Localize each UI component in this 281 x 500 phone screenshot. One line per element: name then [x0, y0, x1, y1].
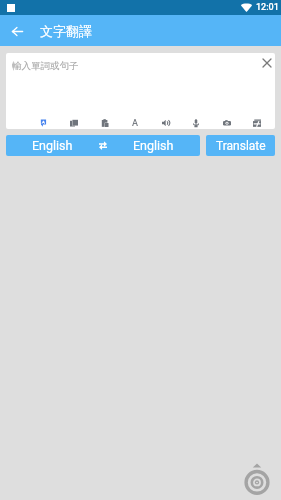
staticText: English — [32, 138, 73, 153]
staticText: A — [132, 118, 138, 129]
button[interactable]: Paste — [97, 117, 113, 129]
button[interactable]: Camera — [219, 117, 235, 129]
staticText: 12:01 — [256, 2, 279, 13]
button[interactable]: Font size — [127, 117, 143, 129]
button[interactable]: English — [6, 135, 99, 156]
staticText: English — [133, 138, 174, 153]
button[interactable]: Gallery — [249, 117, 265, 129]
staticText: 文字翻譯 — [40, 23, 92, 39]
button[interactable]: Back — [5, 19, 29, 43]
staticText: 輸入單詞或句子 — [12, 60, 79, 72]
button[interactable]: Swap languages — [99, 135, 107, 156]
staticText: Translate — [216, 139, 266, 153]
button[interactable]: Copy — [66, 117, 82, 129]
button[interactable]: English — [107, 135, 200, 156]
button[interactable]: Voice input — [188, 117, 204, 129]
button[interactable]: Translate — [206, 135, 275, 156]
button[interactable]: Assistive menu — [240, 463, 272, 495]
button[interactable]: Clear — [259, 55, 274, 70]
button[interactable]: Speak — [158, 117, 174, 129]
button[interactable]: Translate — [36, 117, 52, 129]
